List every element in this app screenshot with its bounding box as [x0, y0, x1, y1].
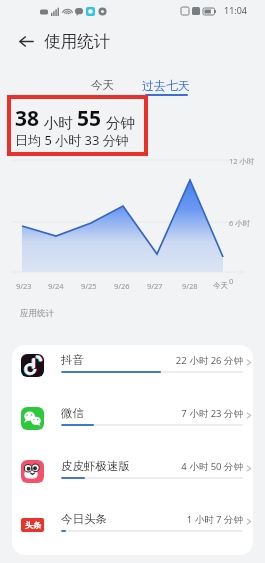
staticText: 12 小时: [229, 156, 255, 166]
staticText: 22 小时 26 分钟: [163, 354, 243, 367]
staticText: 抖音: [61, 353, 84, 367]
staticText: 今日头条: [61, 512, 107, 526]
staticText: 过去七天: [142, 78, 190, 93]
staticText: 9/27: [147, 281, 163, 291]
staticText: 9/28: [182, 281, 198, 291]
button[interactable]: 过去七天: [134, 73, 198, 96]
staticText: 应用统计: [20, 308, 54, 319]
staticText: 38: [15, 104, 40, 133]
button[interactable]: 头条: [12, 504, 253, 555]
staticText: 9/24: [48, 281, 64, 291]
button[interactable]: Back: [14, 29, 39, 54]
staticText: 0: [229, 276, 234, 286]
staticText: 微信: [61, 406, 84, 420]
staticText: 使用统计: [44, 31, 110, 52]
button[interactable]: 今天: [82, 73, 122, 95]
button[interactable]: 抖音: [12, 345, 253, 398]
staticText: 7 小时 23 分钟: [163, 407, 243, 420]
staticText: 头条: [25, 520, 41, 530]
staticText: 分钟: [102, 112, 135, 132]
staticText: 小时: [40, 112, 77, 132]
staticText: 9/26: [114, 281, 130, 291]
staticText: 4 小时 50 分钟: [163, 460, 243, 473]
staticText: 9/25: [81, 281, 97, 291]
staticText: 今天: [91, 78, 114, 92]
staticText: 皮皮虾极速版: [61, 459, 130, 473]
staticText: 55: [77, 104, 102, 133]
button[interactable]: 微信: [12, 398, 253, 451]
staticText: 9/23: [16, 281, 32, 291]
button[interactable]: 皮皮虾极速版: [12, 451, 253, 504]
staticText: 11:04: [224, 4, 248, 16]
staticText: 1 小时 7 分钟: [163, 513, 243, 526]
staticText: 今天: [213, 281, 228, 290]
staticText: 6 小时: [229, 218, 251, 228]
staticText: 日均 5 小时 33 分钟: [15, 131, 129, 149]
